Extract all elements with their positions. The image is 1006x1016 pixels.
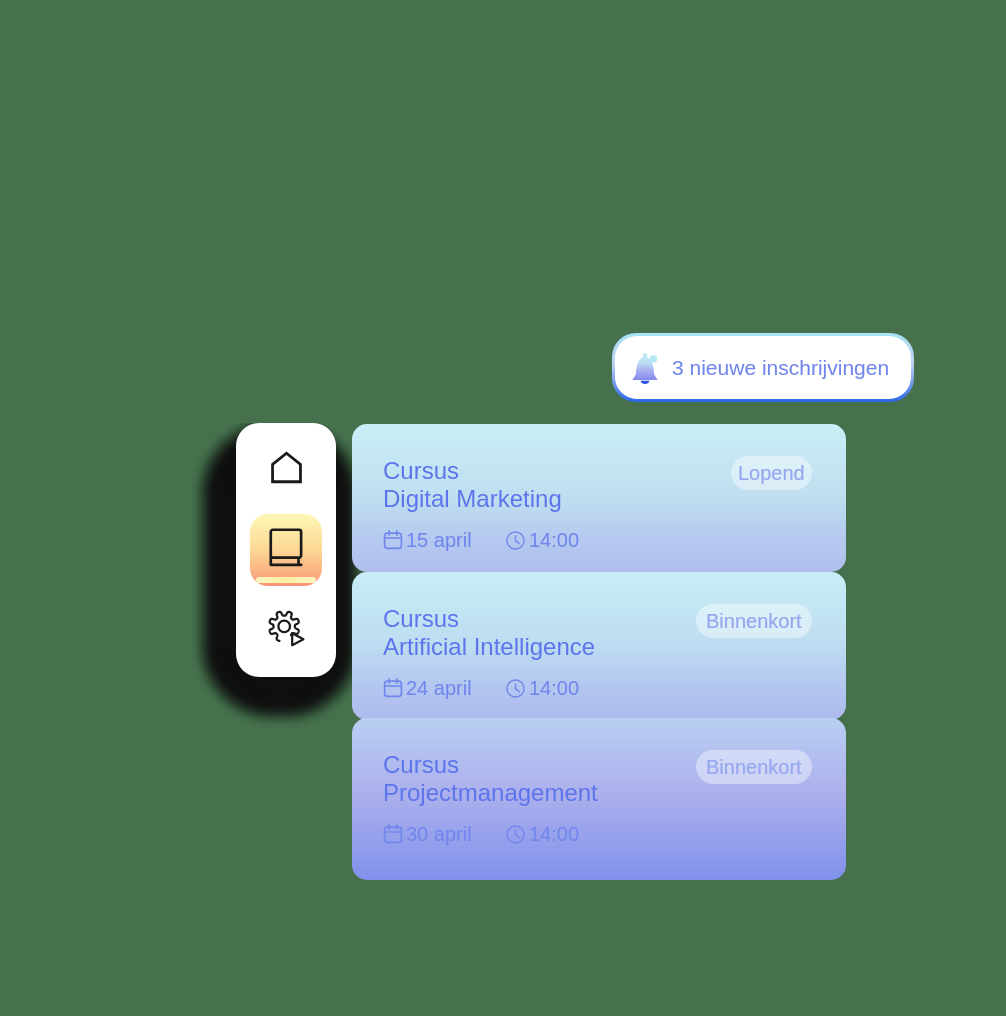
staticText: Binnenkort <box>706 610 802 632</box>
staticText: 15 april <box>406 529 472 551</box>
button[interactable]: Binnenkort <box>696 604 812 638</box>
staticText: Binnenkort <box>706 756 802 778</box>
button[interactable]: Lopend <box>731 456 812 490</box>
staticText: 14:00 <box>529 529 580 551</box>
button[interactable]: Settings <box>255 598 317 660</box>
staticText: Cursus Artificial Intelligence <box>383 605 596 660</box>
staticText: 30 april <box>406 823 472 845</box>
button[interactable]: Cursus Projectmanagement <box>352 718 846 880</box>
button[interactable]: Binnenkort <box>696 750 812 784</box>
staticText: 3 nieuwe inschrijvingen <box>672 356 890 379</box>
staticText: 14:00 <box>529 677 580 699</box>
staticText: Cursus Digital Marketing <box>383 457 562 512</box>
button[interactable]: Home <box>255 436 317 498</box>
staticText: 24 april <box>406 677 472 699</box>
staticText: 14:00 <box>529 823 580 845</box>
staticText: Lopend <box>738 462 805 484</box>
button[interactable]: 3 nieuwe inschrijvingen <box>615 336 911 399</box>
button[interactable]: Cursus Artificial Intelligence <box>352 572 846 720</box>
button[interactable]: Cursus Digital Marketing <box>352 424 846 572</box>
staticText: Cursus Projectmanagement <box>383 751 598 806</box>
button[interactable]: Courses <box>250 514 322 586</box>
